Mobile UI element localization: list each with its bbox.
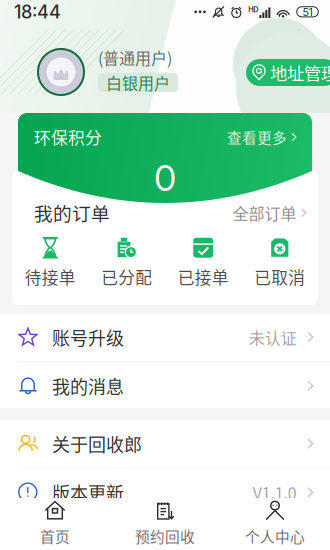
button[interactable]: 预约回收 (110, 500, 220, 547)
staticText: (普通用户) (98, 46, 172, 69)
staticText: 版本更新 (52, 479, 124, 505)
button[interactable]: 个人中心 (220, 500, 330, 547)
staticText: 未认证 (249, 326, 297, 349)
button[interactable]: 待接单 (12, 237, 88, 289)
staticText: 环保积分 (34, 125, 102, 149)
staticText: 白银用户 (106, 71, 170, 94)
staticText: 18:44 (14, 1, 61, 23)
button[interactable]: 查看更多 (227, 126, 297, 148)
button[interactable]: 全部订单 (232, 201, 307, 224)
staticText: 个人中心 (245, 525, 305, 547)
staticText: 账号升级 (52, 324, 124, 350)
button[interactable]: 地址管理 (246, 59, 330, 86)
button[interactable]: 版本更新 (0, 468, 330, 516)
staticText: 51 (302, 5, 312, 18)
staticText: 已接单 (178, 265, 229, 289)
staticText: 已分配 (101, 265, 152, 289)
staticText: 我的消息 (52, 373, 124, 399)
button[interactable]: 首页 (0, 500, 110, 547)
button[interactable]: 我的消息 (0, 362, 330, 410)
button[interactable]: 已接单 (165, 237, 241, 289)
staticText: 首页 (40, 525, 70, 547)
staticText: 地址管理 (270, 60, 330, 85)
staticText: V1.1.0 (253, 481, 297, 504)
staticText: 0 (154, 156, 176, 200)
button[interactable]: 已分配 (88, 237, 165, 289)
staticText: 待接单 (25, 265, 76, 289)
staticText: 我的订单 (34, 199, 110, 226)
staticText: 关于回收郎 (52, 431, 142, 457)
button[interactable]: 关于回收郎 (0, 420, 330, 468)
staticText: 预约回收 (135, 525, 195, 547)
staticText: 已取消 (254, 265, 305, 289)
button[interactable]: 账号升级 (0, 313, 330, 361)
button[interactable]: 已取消 (241, 237, 318, 289)
staticText: 全部订单 (232, 201, 296, 224)
staticText: HD (248, 5, 258, 14)
staticText: 查看更多 (227, 126, 287, 148)
